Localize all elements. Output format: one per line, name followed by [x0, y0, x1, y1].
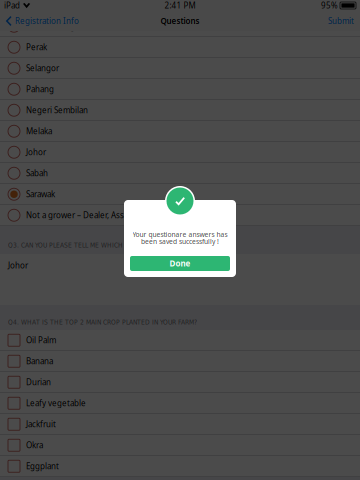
- staticText: Questions: [160, 16, 199, 26]
- staticText: Pahang: [26, 84, 54, 94]
- staticText: Johor: [8, 260, 28, 271]
- staticText: Leafy vegetable: [26, 398, 86, 408]
- button[interactable]: Oil Palm: [0, 330, 360, 350]
- button[interactable]: Negeri Sembilan: [0, 100, 360, 120]
- button[interactable]: Melaka: [0, 121, 360, 141]
- button[interactable]: Sabah: [0, 163, 360, 183]
- staticText: iPad: [4, 0, 20, 11]
- button[interactable]: Done: [130, 256, 230, 271]
- staticText: been saved successfully !: [141, 237, 219, 246]
- staticText: Perak: [26, 42, 47, 52]
- staticText: Eggplant: [26, 461, 59, 471]
- staticText: Negeri Sembilan: [26, 105, 88, 115]
- staticText: Q4. WHAT IS THE TOP 2 MAIN CROP PLANTED …: [8, 318, 197, 326]
- button[interactable]: Submit: [328, 14, 360, 28]
- staticText: 2:41 PM: [164, 0, 195, 11]
- button[interactable]: Pulau Pinang: [0, 16, 360, 36]
- staticText: Done: [169, 258, 190, 269]
- button[interactable]: Johor: [0, 254, 360, 305]
- button[interactable]: Perak: [0, 37, 360, 57]
- staticText: Banana: [26, 356, 53, 366]
- button[interactable]: Leafy vegetable: [0, 393, 360, 413]
- button[interactable]: Pahang: [0, 79, 360, 99]
- button[interactable]: Not a grower – Dealer, Assistant, Worker…: [0, 205, 360, 225]
- staticText: Sarawak: [26, 189, 55, 199]
- button[interactable]: Selangor: [0, 58, 360, 78]
- staticText: Durian: [26, 377, 51, 387]
- button[interactable]: Banana: [0, 351, 360, 371]
- staticText: Not a grower – Dealer, Assistant, Worker…: [26, 210, 211, 220]
- staticText: Registration Info: [15, 16, 79, 26]
- button[interactable]: Okra: [0, 435, 360, 455]
- button[interactable]: Eggplant: [0, 456, 360, 476]
- button[interactable]: Sarawak: [0, 184, 360, 204]
- staticText: Okra: [26, 440, 43, 450]
- button[interactable]: Jackfruit: [0, 414, 360, 434]
- button[interactable]: Registration Info: [0, 14, 79, 28]
- staticText: Submit: [328, 16, 354, 26]
- staticText: Jackfruit: [26, 419, 56, 429]
- staticText: Sabah: [26, 168, 48, 178]
- staticText: Q3. CAN YOU PLEASE TELL ME WHICH DISTRIC…: [8, 241, 194, 249]
- staticText: Your questionare answers has: [132, 230, 227, 239]
- staticText: Selangor: [26, 63, 59, 73]
- staticText: Oil Palm: [26, 335, 56, 345]
- staticText: Johor: [26, 147, 46, 157]
- button[interactable]: Johor: [0, 142, 360, 162]
- staticText: Pulau Pinang: [26, 21, 75, 31]
- button[interactable]: Durian: [0, 372, 360, 392]
- staticText: 95%: [321, 0, 338, 11]
- staticText: Melaka: [26, 126, 52, 136]
